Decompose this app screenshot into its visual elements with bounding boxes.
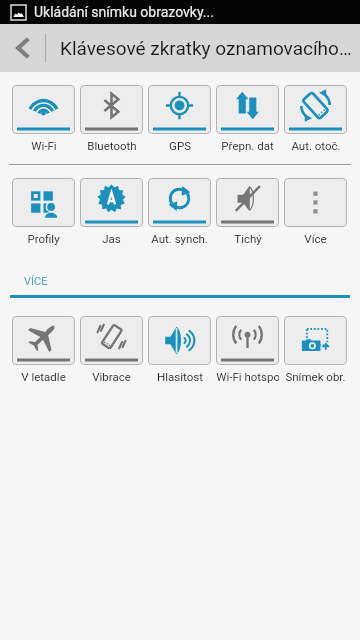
button[interactable]: Více	[284, 178, 347, 245]
staticText: Vibrace	[92, 370, 131, 383]
staticText: V letadle	[21, 370, 66, 383]
staticText: Jas	[102, 232, 121, 245]
staticText: Více	[304, 232, 327, 245]
staticText: Přepn. dat	[221, 139, 274, 152]
staticText: Wi-Fi hotspot	[216, 370, 279, 383]
staticText: VÍCE	[24, 275, 48, 288]
staticText: Klávesové zkratky oznamovacího…	[60, 37, 352, 59]
staticText: Bluetooth	[87, 139, 137, 152]
staticText: Aut. otoč.	[291, 139, 341, 152]
staticText: Ukládání snímku obrazovky...	[34, 4, 214, 20]
button[interactable]: Wi-Fi hotspot	[216, 316, 279, 383]
button[interactable]: Tichý	[216, 178, 279, 245]
button[interactable]: Aut. synch.	[148, 178, 211, 245]
staticText: Wi-Fi	[31, 139, 57, 152]
button[interactable]: V letadle	[12, 316, 75, 383]
button[interactable]: GPS	[148, 85, 211, 152]
button[interactable]: Vibrace	[80, 316, 143, 383]
button[interactable]: Profily	[12, 178, 75, 245]
button[interactable]: Aut. otoč.	[284, 85, 347, 152]
button[interactable]: Hlasitost	[148, 316, 211, 383]
staticText: Snímek obr.	[285, 370, 346, 383]
staticText: Aut. synch.	[151, 232, 208, 245]
button[interactable]: Bluetooth	[80, 85, 143, 152]
button[interactable]: Wi-Fi	[12, 85, 75, 152]
staticText: Profily	[27, 232, 60, 245]
staticText: Tichý	[234, 232, 262, 245]
button[interactable]: Přepn. dat	[216, 85, 279, 152]
button[interactable]: Snímek obr.	[284, 316, 347, 383]
staticText: GPS	[169, 139, 191, 152]
staticText: Hlasitost	[157, 370, 203, 383]
button[interactable]: Jas	[80, 178, 143, 245]
button[interactable]: Back	[0, 24, 45, 72]
